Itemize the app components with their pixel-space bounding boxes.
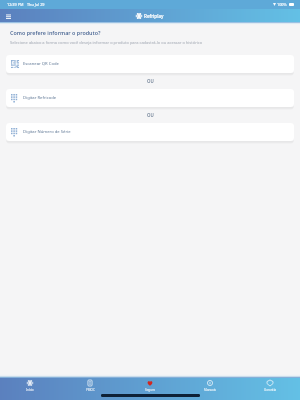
button[interactable]: Seguro — [120, 378, 180, 393]
staticText: PMOC — [86, 388, 95, 392]
staticText: Escanear QR Code — [23, 61, 59, 67]
button[interactable]: Manuais — [180, 378, 240, 393]
button[interactable]: Digitar Número de Série — [6, 123, 294, 141]
staticText: OU — [147, 112, 154, 118]
button[interactable]: PMOC — [60, 378, 120, 393]
staticText: Selecione abaixo a forma como você desej… — [10, 40, 203, 45]
staticText: Digitar Número de Série — [23, 129, 71, 135]
staticText: Manuais — [204, 388, 217, 392]
button[interactable]: Garantia — [240, 378, 300, 393]
staticText: 12:39 PM — [7, 2, 24, 7]
staticText: Thu Jul 29 — [27, 2, 45, 7]
button[interactable]: Digitar Refricode — [6, 89, 294, 107]
button[interactable]: Menu — [3, 11, 13, 21]
button[interactable]: Início — [0, 378, 60, 393]
staticText: Digitar Refricode — [23, 95, 57, 101]
button[interactable]: Escanear QR Code — [6, 55, 294, 73]
staticText: Seguro — [145, 388, 156, 392]
staticText: OU — [147, 78, 154, 84]
staticText: Refriplay — [144, 13, 164, 19]
staticText: Garantia — [264, 388, 277, 392]
staticText: Início — [26, 388, 34, 392]
staticText: 100% — [277, 2, 287, 7]
staticText: Como prefere informar o produto? — [10, 29, 101, 36]
